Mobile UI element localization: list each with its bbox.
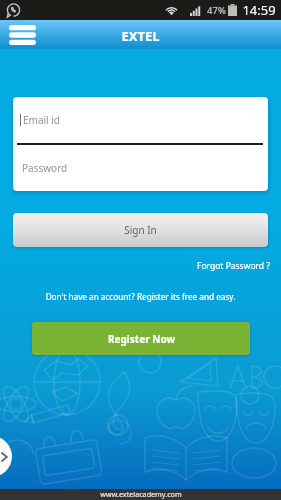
staticText: www.extelacademy.com [100,489,182,499]
staticText: Forgot Password ? [197,260,270,272]
button[interactable]: Register Now [32,322,250,355]
button[interactable]: Sign In [13,213,268,247]
button[interactable]: Forgot Password ? [0,259,281,273]
button[interactable]: Email id [13,97,268,143]
staticText: Don't have an account? Register its free… [0,291,281,302]
staticText: EXTEL [121,27,160,45]
staticText: Password [22,161,68,175]
button[interactable]: Password [13,145,268,191]
staticText: Register Now [108,332,175,346]
button[interactable]: Open side panel [0,436,12,477]
button[interactable]: Menu [4,20,40,49]
staticText: Sign In [124,223,157,237]
staticText: 47% [207,4,226,17]
staticText: 14:59 [242,1,276,19]
staticText: Email id [23,113,61,127]
